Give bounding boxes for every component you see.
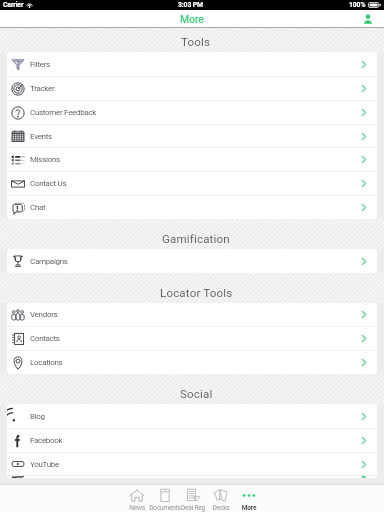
button[interactable]: Profile	[361, 12, 375, 26]
staticText: Social	[180, 387, 213, 401]
staticText: Contact Us	[30, 179, 67, 188]
button[interactable]: Customer Feedback	[7, 101, 377, 124]
button[interactable]: Deal Reg	[179, 485, 207, 512]
staticText: Customer Feedback	[30, 108, 97, 117]
staticText: YouTube	[30, 460, 59, 469]
staticText: Locations	[30, 358, 63, 367]
button[interactable]: YouTube	[7, 453, 377, 475]
button[interactable]: Missions	[7, 148, 377, 171]
staticText: Locator Tools	[160, 286, 233, 300]
button[interactable]: Locations	[7, 351, 377, 374]
staticText: Events	[30, 132, 52, 141]
button[interactable]: Contacts	[7, 327, 377, 350]
staticText: Chat	[30, 203, 46, 212]
staticText: Documents	[135, 504, 195, 512]
staticText: More	[219, 504, 279, 512]
staticText: Contacts	[30, 334, 60, 343]
staticText: Decks	[191, 504, 251, 512]
staticText: 100%	[349, 1, 366, 9]
staticText: Gamification	[162, 232, 230, 246]
staticText: Blog	[30, 412, 45, 421]
button[interactable]: Chat	[7, 196, 377, 219]
button[interactable]: Filters	[7, 52, 377, 76]
button[interactable]: More	[235, 485, 263, 512]
staticText: Missions	[30, 155, 60, 164]
staticText: Campaigns	[30, 257, 68, 266]
staticText: News	[107, 504, 167, 512]
button[interactable]: Campaigns	[7, 249, 377, 273]
staticText: Carrier	[3, 1, 24, 9]
button[interactable]: Twitter	[7, 476, 377, 478]
button[interactable]: Documents	[151, 485, 179, 512]
button[interactable]: Events	[7, 125, 377, 147]
staticText: Deal Reg	[163, 504, 223, 512]
staticText: Filters	[30, 60, 50, 69]
staticText: Tracker	[30, 84, 55, 93]
button[interactable]: Facebook	[7, 429, 377, 452]
staticText: Tools	[181, 35, 211, 49]
staticText: Facebook	[30, 436, 63, 445]
button[interactable]: News	[123, 485, 151, 512]
button[interactable]: Blog	[7, 404, 377, 428]
staticText: More	[180, 13, 204, 25]
button[interactable]: Contact Us	[7, 172, 377, 195]
button[interactable]: Decks	[207, 485, 235, 512]
staticText: 3:03 PM	[178, 1, 203, 9]
button[interactable]: Vendors	[7, 303, 377, 326]
staticText: Vendors	[30, 310, 58, 319]
button[interactable]: Tracker	[7, 77, 377, 100]
